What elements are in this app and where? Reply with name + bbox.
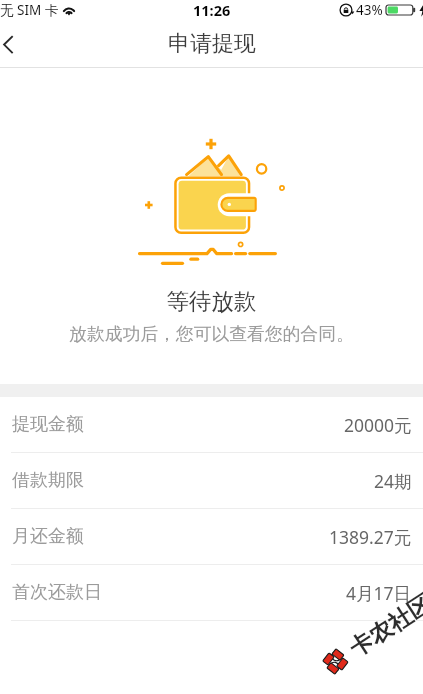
button[interactable]: 借款期限: [0, 453, 423, 508]
staticText: 11:26: [193, 0, 231, 20]
staticText: 等待放款: [0, 287, 423, 315]
button[interactable]: 首次还款日: [0, 565, 423, 620]
staticText: 借款期限: [12, 469, 84, 492]
button[interactable]: 提现金额: [0, 397, 423, 452]
staticText: 月还金额: [12, 525, 84, 548]
staticText: 首次还款日: [12, 581, 102, 604]
staticText: 1389.27元: [329, 525, 412, 549]
staticText: 申请提现: [168, 30, 256, 58]
staticText: 24期: [374, 469, 412, 493]
button[interactable]: 月还金额: [0, 509, 423, 564]
staticText: 4月17日: [346, 581, 412, 605]
staticText: 43%: [356, 1, 383, 19]
button[interactable]: Back: [0, 22, 30, 66]
staticText: 放款成功后，您可以查看您的合同。: [0, 323, 423, 345]
staticText: 20000元: [344, 413, 412, 437]
staticText: 提现金额: [12, 413, 84, 436]
staticText: 无 SIM 卡: [0, 1, 59, 19]
